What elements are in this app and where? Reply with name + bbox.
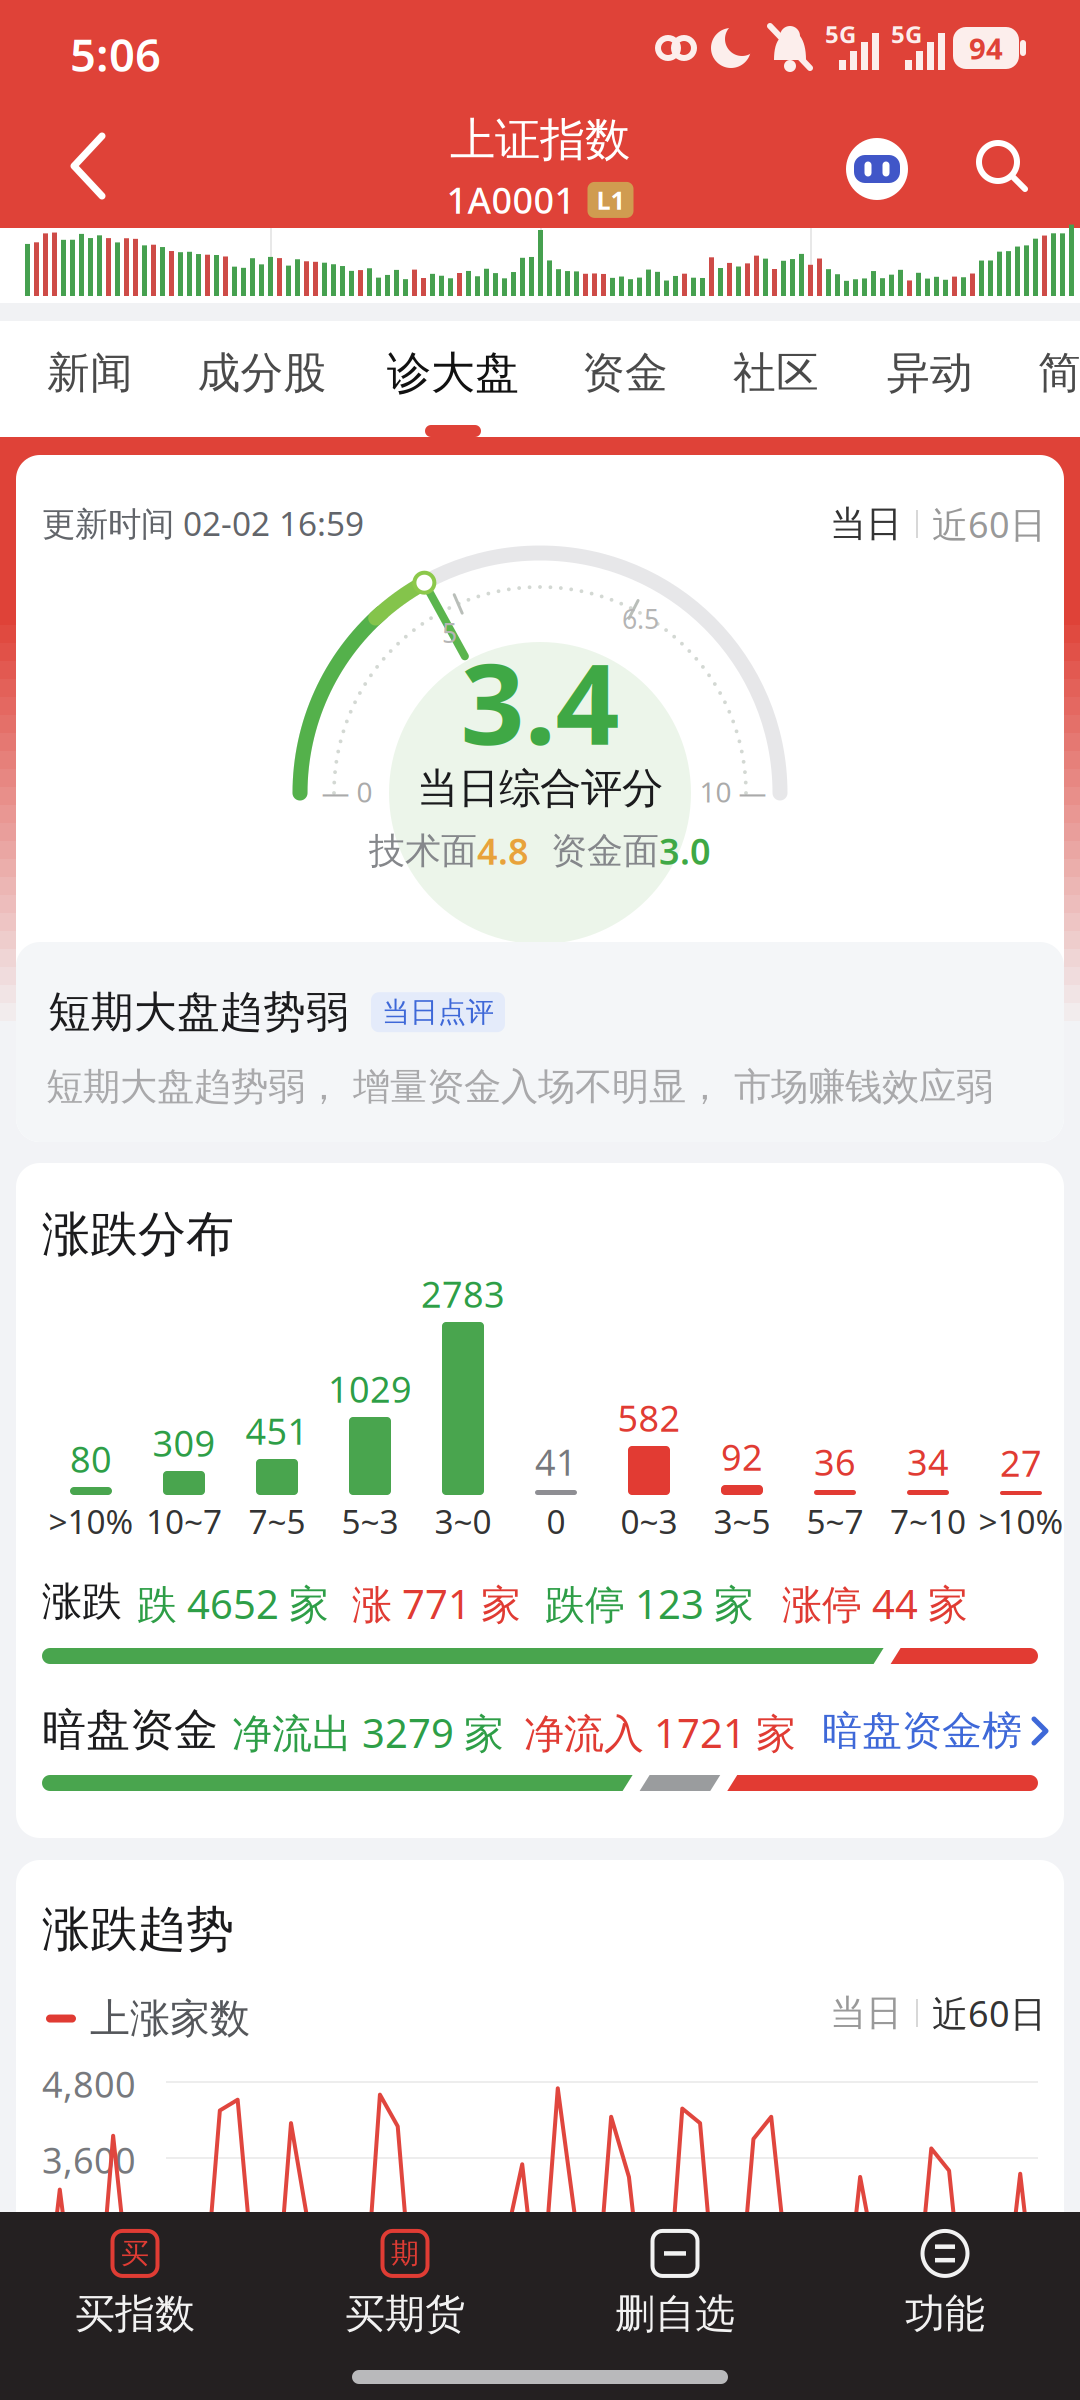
staticText: 简况 [1038, 347, 1080, 399]
staticText: 5~7 [806, 1499, 863, 1543]
staticText: 涨停 44 家 [782, 1577, 968, 1630]
staticText: 删自选 [615, 2289, 735, 2338]
staticText: 社区 [733, 347, 819, 399]
staticText: 4.8 [477, 827, 529, 875]
staticText: 成分股 [197, 347, 326, 399]
staticText: 5G [891, 18, 922, 50]
staticText: 跌 4652 家 [137, 1577, 329, 1630]
button[interactable]: 暗盘资金榜 [806, 1703, 1052, 1759]
staticText: 诊大盘 [387, 346, 519, 400]
staticText: 5 [442, 615, 457, 650]
button[interactable]: 社区 [691, 323, 861, 423]
staticText: 3~5 [713, 1499, 770, 1543]
button[interactable]: 当日 [822, 1988, 1054, 2038]
button[interactable]: 简况 [996, 323, 1080, 423]
staticText: >10% [48, 1499, 133, 1543]
staticText: 7~5 [248, 1499, 305, 1543]
staticText: 10 — [699, 773, 766, 810]
staticText: 资金 [582, 347, 668, 399]
staticText: 暗盘资金榜 [822, 1706, 1022, 1755]
staticText: 买指数 [75, 2289, 195, 2338]
button[interactable]: 诊大盘 [368, 323, 538, 423]
button[interactable]: 新闻 [5, 323, 175, 423]
staticText: 309 [152, 1419, 215, 1467]
staticText: 2783 [421, 1270, 505, 1318]
staticText: 1A0001 [446, 176, 575, 224]
staticText: 6.5 [622, 601, 659, 636]
button[interactable] [974, 138, 1030, 194]
staticText: 暗盘资金 [42, 1703, 218, 1757]
staticText: 更新时间 02-02 16:59 [42, 501, 364, 545]
staticText: 3~0 [434, 1499, 491, 1543]
button[interactable]: 买 [0, 2222, 270, 2346]
button[interactable]: 当日 [822, 499, 1054, 549]
staticText: 92 [721, 1433, 763, 1481]
staticText: 涨跌分布 [42, 1205, 234, 1264]
staticText: 3,600 [42, 2136, 136, 2184]
button[interactable]: 异动 [845, 323, 1015, 423]
staticText: 上证指数 [450, 112, 630, 168]
staticText: 期 [391, 2236, 419, 2271]
staticText: 1029 [328, 1365, 412, 1413]
staticText: 当日综合评分 [417, 763, 663, 814]
staticText: 跌停 123 家 [545, 1577, 754, 1630]
staticText: 近60日 [932, 1989, 1046, 2037]
staticText: 资金面 [529, 829, 659, 873]
staticText: 582 [617, 1394, 680, 1442]
staticText: 5G [825, 18, 856, 50]
staticText: 3.4 [460, 627, 619, 776]
button[interactable] [844, 136, 910, 202]
staticText: 0~3 [620, 1499, 677, 1543]
staticText: 4,800 [42, 2060, 136, 2108]
staticText: 买期货 [345, 2289, 465, 2338]
staticText: 当日 [830, 1991, 902, 2035]
button[interactable] [66, 128, 110, 204]
staticText: 10~7 [146, 1499, 222, 1543]
staticText: 5:06 [70, 24, 161, 84]
staticText: 短期大盘趋势弱， 增量资金入场不明显， 市场赚钱效应弱 [46, 1064, 993, 1110]
staticText: 异动 [887, 347, 973, 399]
staticText: 0 [546, 1499, 565, 1543]
button[interactable]: 删自选 [540, 2222, 810, 2346]
staticText: 94 [969, 28, 1003, 67]
staticText: 5~3 [341, 1499, 398, 1543]
staticText: 80 [70, 1435, 112, 1483]
staticText: 涨跌趋势 [42, 1900, 234, 1959]
staticText: 7~10 [890, 1499, 966, 1543]
button[interactable]: 资金 [540, 323, 710, 423]
staticText: 技术面 [369, 829, 477, 873]
staticText: 上涨家数 [90, 1994, 250, 2043]
staticText: 451 [245, 1407, 308, 1455]
staticText: 净流出 3279 家 [232, 1706, 504, 1759]
staticText: L1 [596, 183, 624, 217]
staticText: 买 [121, 2236, 149, 2271]
staticText: 涨 771 家 [352, 1577, 521, 1630]
staticText: 27 [1000, 1439, 1042, 1487]
staticText: 功能 [905, 2289, 985, 2338]
button[interactable]: 功能 [810, 2222, 1080, 2346]
button[interactable]: 期 [270, 2222, 540, 2346]
staticText: 当日点评 [382, 995, 494, 1029]
staticText: 34 [907, 1438, 949, 1486]
staticText: 近60日 [932, 500, 1046, 548]
staticText: 当日 [830, 502, 902, 546]
staticText: 涨跌 [42, 1577, 122, 1626]
staticText: 3.0 [659, 827, 711, 875]
staticText: — 0 [321, 773, 372, 810]
staticText: 净流入 1721 家 [524, 1706, 796, 1759]
staticText: >10% [978, 1499, 1063, 1543]
staticText: 41 [535, 1438, 577, 1486]
staticText: 36 [814, 1438, 856, 1486]
button[interactable]: 成分股 [177, 323, 347, 423]
staticText: 新闻 [47, 347, 133, 399]
staticText: 短期大盘趋势弱 [48, 986, 349, 1038]
